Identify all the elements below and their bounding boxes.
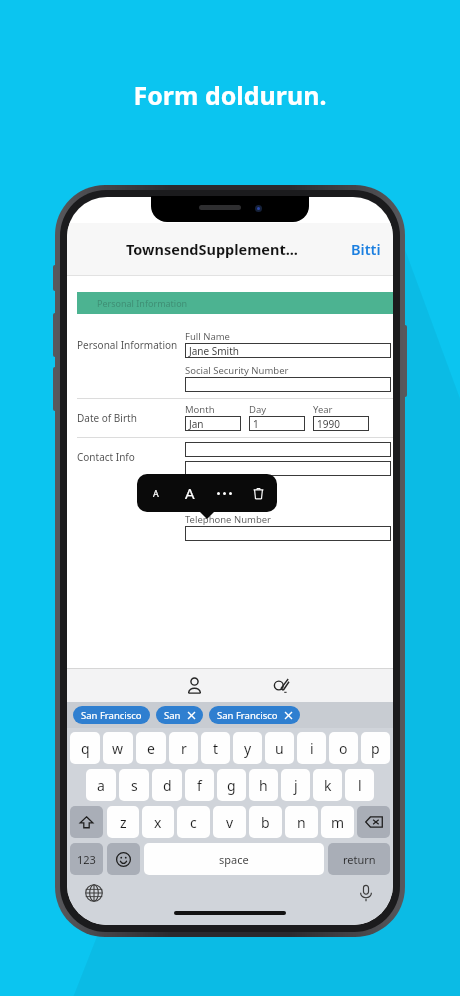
staticText: r — [181, 739, 187, 758]
button[interactable]: Backspace — [357, 806, 390, 838]
staticText: t — [213, 739, 219, 758]
button[interactable] — [185, 442, 391, 457]
staticText: return — [343, 852, 376, 867]
staticText: p — [371, 739, 380, 758]
staticText: 1990 — [317, 417, 340, 431]
button[interactable]: Jane Smith — [185, 343, 391, 358]
staticText: i — [310, 739, 314, 758]
button[interactable]: Bitti — [339, 231, 393, 267]
button[interactable]: y — [233, 732, 262, 764]
button[interactable]: v — [213, 806, 246, 838]
staticText: Jane Smith — [189, 344, 239, 358]
staticText: Contact Info — [77, 450, 185, 464]
staticText: e — [147, 739, 155, 758]
button[interactable]: p — [361, 732, 390, 764]
button[interactable]: f — [185, 769, 214, 801]
staticText: q — [81, 739, 90, 758]
button[interactable]: l — [345, 769, 374, 801]
button[interactable]: Change keyboard — [81, 880, 107, 906]
staticText: m — [331, 813, 345, 832]
button[interactable]: San — [156, 706, 203, 724]
staticText: TownsendSupplement... — [126, 239, 298, 259]
staticText: y — [244, 739, 252, 758]
staticText: d — [163, 776, 172, 795]
button[interactable]: a — [86, 769, 116, 801]
button[interactable]: Delete — [243, 478, 273, 508]
button[interactable]: z — [107, 806, 139, 838]
staticText: Telephone Number — [185, 513, 272, 526]
staticText: A — [185, 483, 195, 503]
button[interactable]: s — [119, 769, 149, 801]
button[interactable]: San Francisco — [73, 706, 150, 724]
staticText: Full Name — [185, 330, 230, 343]
staticText: San — [189, 493, 207, 507]
button[interactable]: g — [217, 769, 246, 801]
button[interactable]: w — [103, 732, 133, 764]
button[interactable]: d — [152, 769, 182, 801]
staticText: w — [112, 739, 124, 758]
button[interactable]: Dictation — [353, 880, 379, 906]
staticText: x — [154, 813, 162, 832]
staticText: k — [324, 776, 332, 795]
staticText: San — [164, 709, 181, 722]
button[interactable]: More options — [209, 478, 239, 508]
staticText: v — [226, 813, 234, 832]
button[interactable]: o — [329, 732, 358, 764]
button[interactable]: t — [201, 732, 230, 764]
button[interactable]: i — [297, 732, 326, 764]
button[interactable]: San Francisco — [209, 706, 300, 724]
button[interactable]: Emoji — [107, 843, 140, 875]
staticText: o — [339, 739, 348, 758]
button[interactable] — [185, 377, 391, 392]
staticText: A — [153, 487, 159, 499]
button[interactable]: u — [265, 732, 294, 764]
staticText: Bitti — [351, 239, 381, 259]
staticText: u — [275, 739, 284, 758]
staticText: Jan — [189, 417, 204, 431]
button[interactable]: x — [142, 806, 174, 838]
staticText: Month — [185, 403, 215, 416]
button[interactable]: Jan — [185, 416, 241, 431]
button[interactable]: 1 — [249, 416, 305, 431]
staticText: j — [294, 776, 298, 795]
button[interactable]: k — [313, 769, 342, 801]
button[interactable]: Shift — [70, 806, 103, 838]
button[interactable]: h — [249, 769, 278, 801]
staticText: San Francisco — [217, 709, 278, 722]
button[interactable]: Increase text size — [175, 478, 205, 508]
staticText: Form doldurun. — [133, 78, 327, 112]
button[interactable]: q — [70, 732, 100, 764]
staticText: z — [120, 813, 127, 832]
button[interactable]: 1990 — [313, 416, 369, 431]
staticText: Date of Birth — [77, 411, 185, 425]
button[interactable]: b — [249, 806, 282, 838]
staticText: g — [227, 776, 236, 795]
staticText: Day — [249, 403, 267, 416]
staticText: Year — [313, 403, 333, 416]
staticText: San Francisco — [81, 709, 142, 722]
button[interactable]: c — [177, 806, 210, 838]
staticText: s — [131, 776, 138, 795]
button[interactable]: Contacts — [174, 669, 214, 702]
button[interactable]: e — [136, 732, 166, 764]
staticText: h — [259, 776, 268, 795]
button[interactable]: space — [144, 843, 324, 875]
button[interactable] — [185, 526, 391, 541]
staticText: Personal Information — [97, 297, 188, 309]
button[interactable]: return — [328, 843, 390, 875]
button[interactable]: j — [281, 769, 310, 801]
staticText: l — [358, 776, 362, 795]
button[interactable] — [185, 461, 391, 476]
staticText: a — [97, 776, 105, 795]
button[interactable]: r — [169, 732, 198, 764]
button[interactable]: 123 — [70, 843, 103, 875]
staticText: c — [190, 813, 197, 832]
staticText: Social Security Number — [185, 364, 289, 377]
button[interactable]: Signature — [260, 669, 300, 702]
button[interactable]: n — [285, 806, 318, 838]
staticText: 1 — [253, 417, 259, 431]
button[interactable]: m — [321, 806, 354, 838]
staticText: 123 — [77, 852, 96, 867]
staticText: space — [219, 852, 249, 867]
button[interactable]: Decrease text size — [141, 478, 171, 508]
